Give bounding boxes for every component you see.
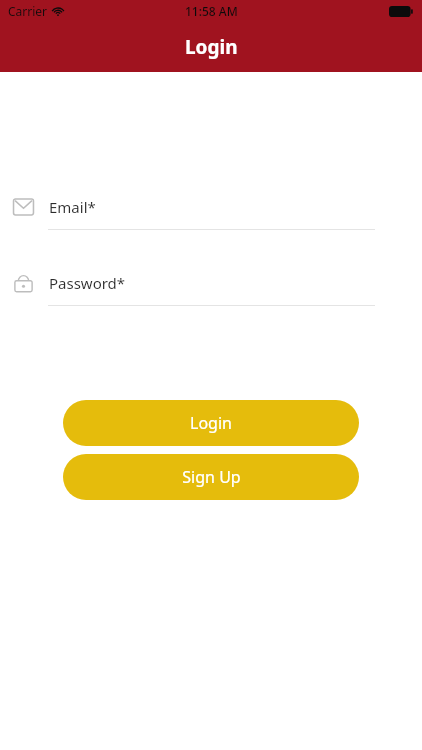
staticText: Email* — [49, 197, 96, 217]
staticText: Password* — [49, 273, 126, 293]
other: Password — [13, 272, 34, 294]
button[interactable]: Sign Up — [63, 454, 359, 500]
staticText: Login — [185, 34, 238, 60]
staticText: Login — [190, 412, 232, 434]
button[interactable]: Login — [63, 400, 359, 446]
staticText: Sign Up — [182, 466, 241, 488]
other: Email — [13, 196, 34, 218]
button[interactable]: Email — [0, 192, 422, 222]
staticText: Carrier — [8, 3, 48, 19]
button[interactable]: Password — [0, 268, 422, 298]
staticText: 11:58 AM — [185, 3, 238, 19]
